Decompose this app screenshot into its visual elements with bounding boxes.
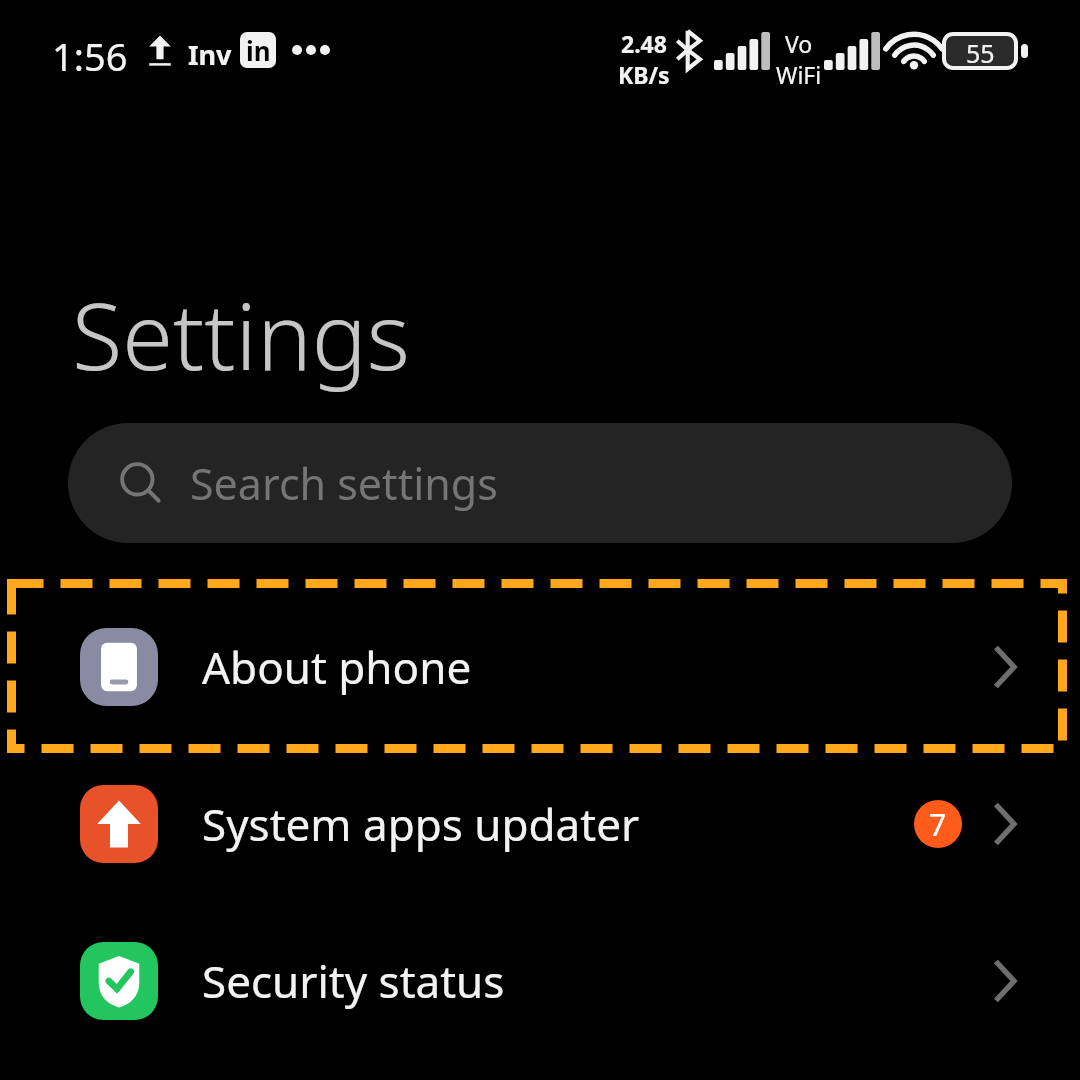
staticText: Settings <box>72 272 410 397</box>
staticText: 1:56 <box>52 30 128 82</box>
staticText: 2.48 <box>621 28 667 59</box>
button[interactable]: System apps updater <box>0 746 1080 902</box>
staticText: About phone <box>202 637 472 697</box>
button[interactable]: Search settings <box>68 423 1012 543</box>
staticText: WiFi <box>776 59 822 90</box>
button[interactable]: Security status <box>0 903 1080 1059</box>
other: About phone <box>80 628 158 706</box>
other: System apps updater <box>80 785 158 863</box>
staticText: Inv <box>188 36 232 73</box>
staticText: KB/s <box>618 59 670 90</box>
staticText: Vo <box>785 28 813 59</box>
button[interactable]: About phone <box>0 589 1080 745</box>
other: Security status <box>80 942 158 1020</box>
staticText: Security status <box>202 951 505 1011</box>
staticText: 7 <box>929 804 947 845</box>
staticText: System apps updater <box>202 794 640 854</box>
staticText: 55 <box>966 36 995 66</box>
staticText: Search settings <box>190 454 498 513</box>
staticText: in <box>246 33 271 68</box>
